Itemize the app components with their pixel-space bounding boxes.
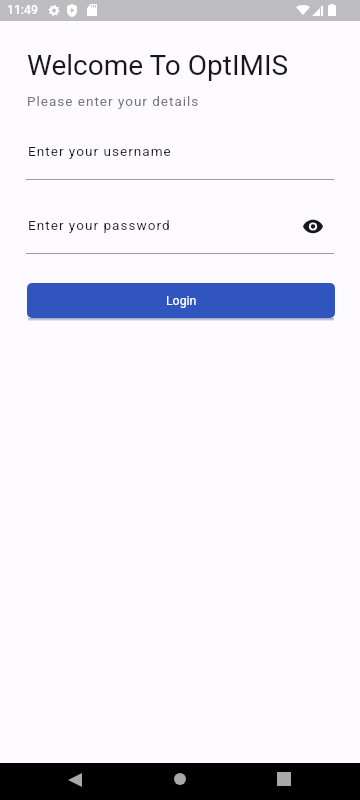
button[interactable]: Enter your username [26, 137, 334, 178]
button[interactable]: Back [55, 763, 95, 796]
staticText: Login [166, 294, 197, 308]
staticText: Welcome To OptIMIS [27, 49, 289, 82]
staticText: Enter your password [28, 217, 171, 233]
button[interactable]: Recent apps [264, 762, 304, 795]
staticText: Enter your username [28, 143, 172, 159]
staticText: 11:49 [7, 3, 38, 17]
button[interactable]: Toggle password visibility [296, 210, 330, 242]
button[interactable]: Enter your password [26, 211, 334, 252]
button[interactable]: Home [160, 762, 200, 795]
button[interactable]: Login [27, 283, 335, 318]
staticText: Please enter your details [27, 93, 200, 109]
